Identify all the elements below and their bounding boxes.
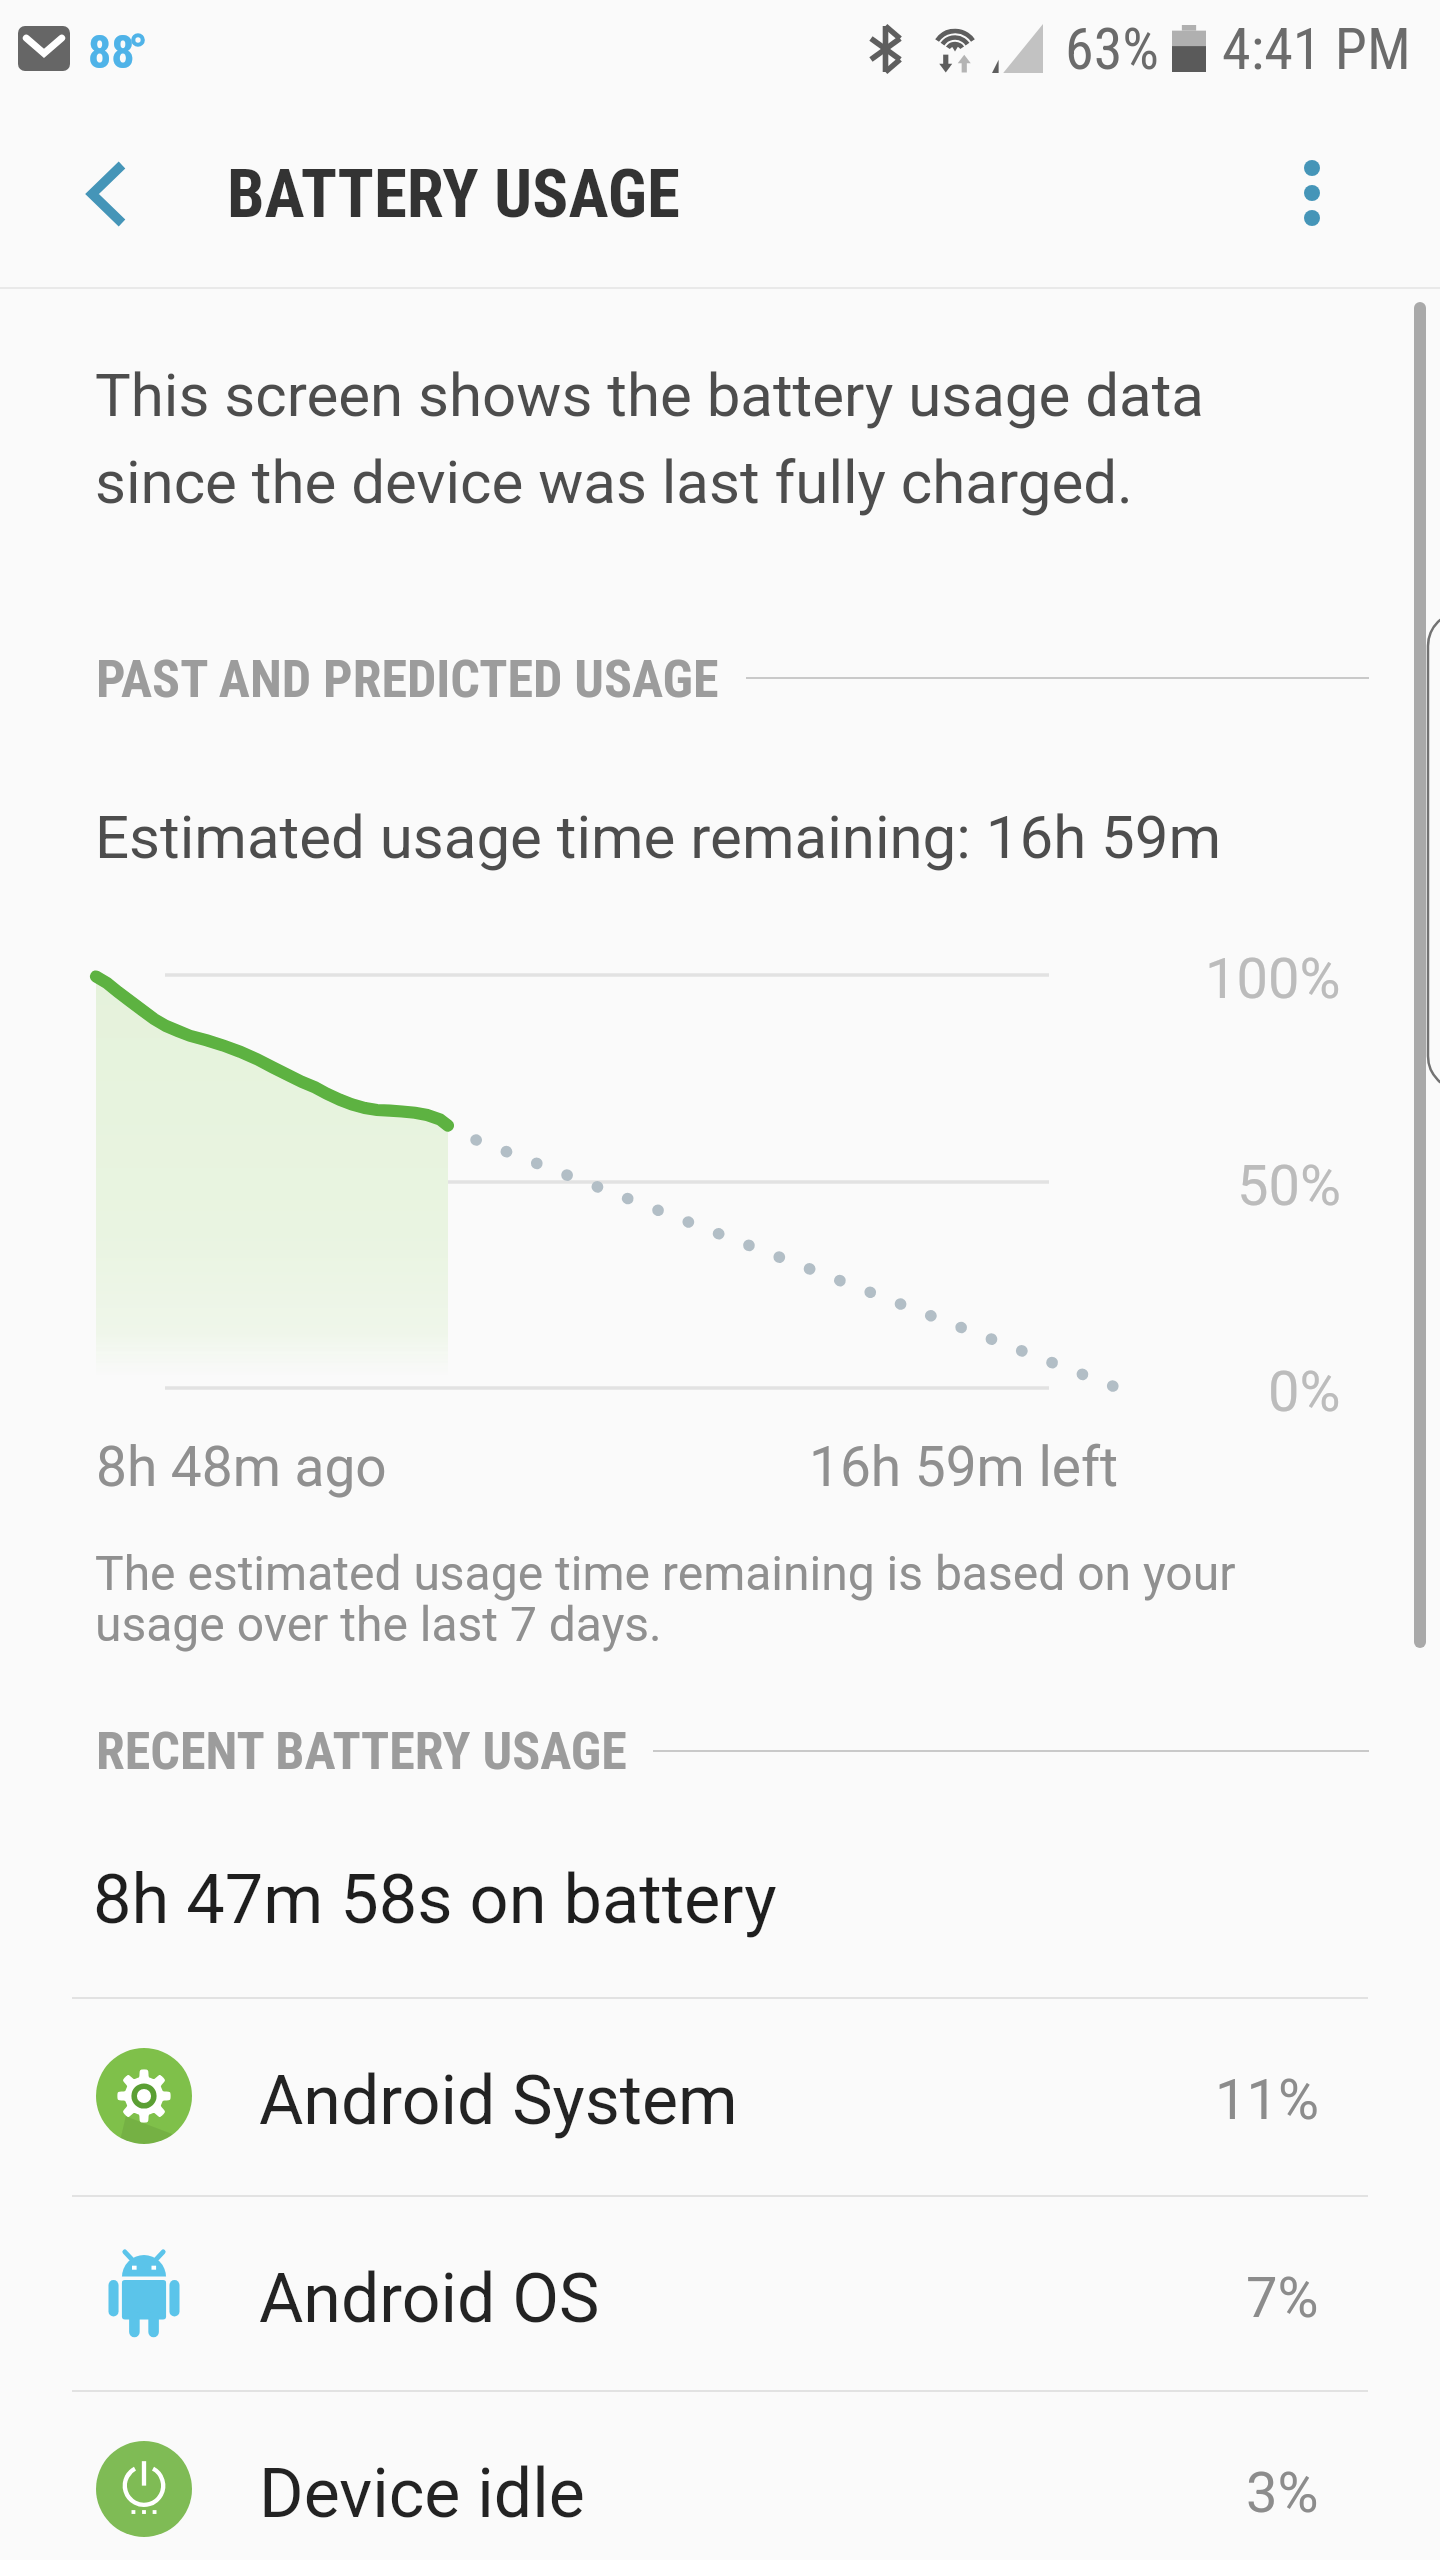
staticText: 16h 59m left (809, 1435, 1119, 1499)
staticText: This screen shows the battery usage data… (95, 360, 1204, 518)
button[interactable]: Back (47, 124, 171, 248)
staticText: 8h 48m ago (96, 1435, 387, 1499)
staticText: BATTERY USAGE (227, 155, 680, 234)
staticText: 11% (1215, 2067, 1319, 2133)
staticText: 63% (1065, 15, 1159, 83)
staticText: Device idle (259, 2454, 585, 2534)
staticText: Android System (259, 2061, 738, 2141)
button[interactable]: Android OS (0, 2195, 1440, 2392)
staticText: 7% (1246, 2265, 1319, 2331)
staticText: 88 (88, 25, 135, 79)
staticText: 0% (1268, 1359, 1341, 1425)
staticText: Estimated usage time remaining: 16h 59m (95, 802, 1222, 872)
staticText: 3% (1246, 2460, 1319, 2526)
staticText: Android OS (259, 2259, 600, 2339)
button[interactable]: Android System (0, 1997, 1440, 2194)
button[interactable]: More options (1257, 115, 1367, 225)
staticText: The estimated usage time remaining is ba… (95, 1545, 1236, 1653)
button[interactable]: Device idle (0, 2390, 1440, 2560)
staticText: 8h 47m 58s on battery (93, 1859, 777, 1939)
staticText: PAST AND PREDICTED USAGE (96, 649, 719, 710)
staticText: 100% (1205, 946, 1341, 1012)
staticText: RECENT BATTERY USAGE (96, 1721, 627, 1782)
staticText: 50% (1237, 1153, 1341, 1219)
staticText: 4:41 PM (1222, 15, 1411, 83)
